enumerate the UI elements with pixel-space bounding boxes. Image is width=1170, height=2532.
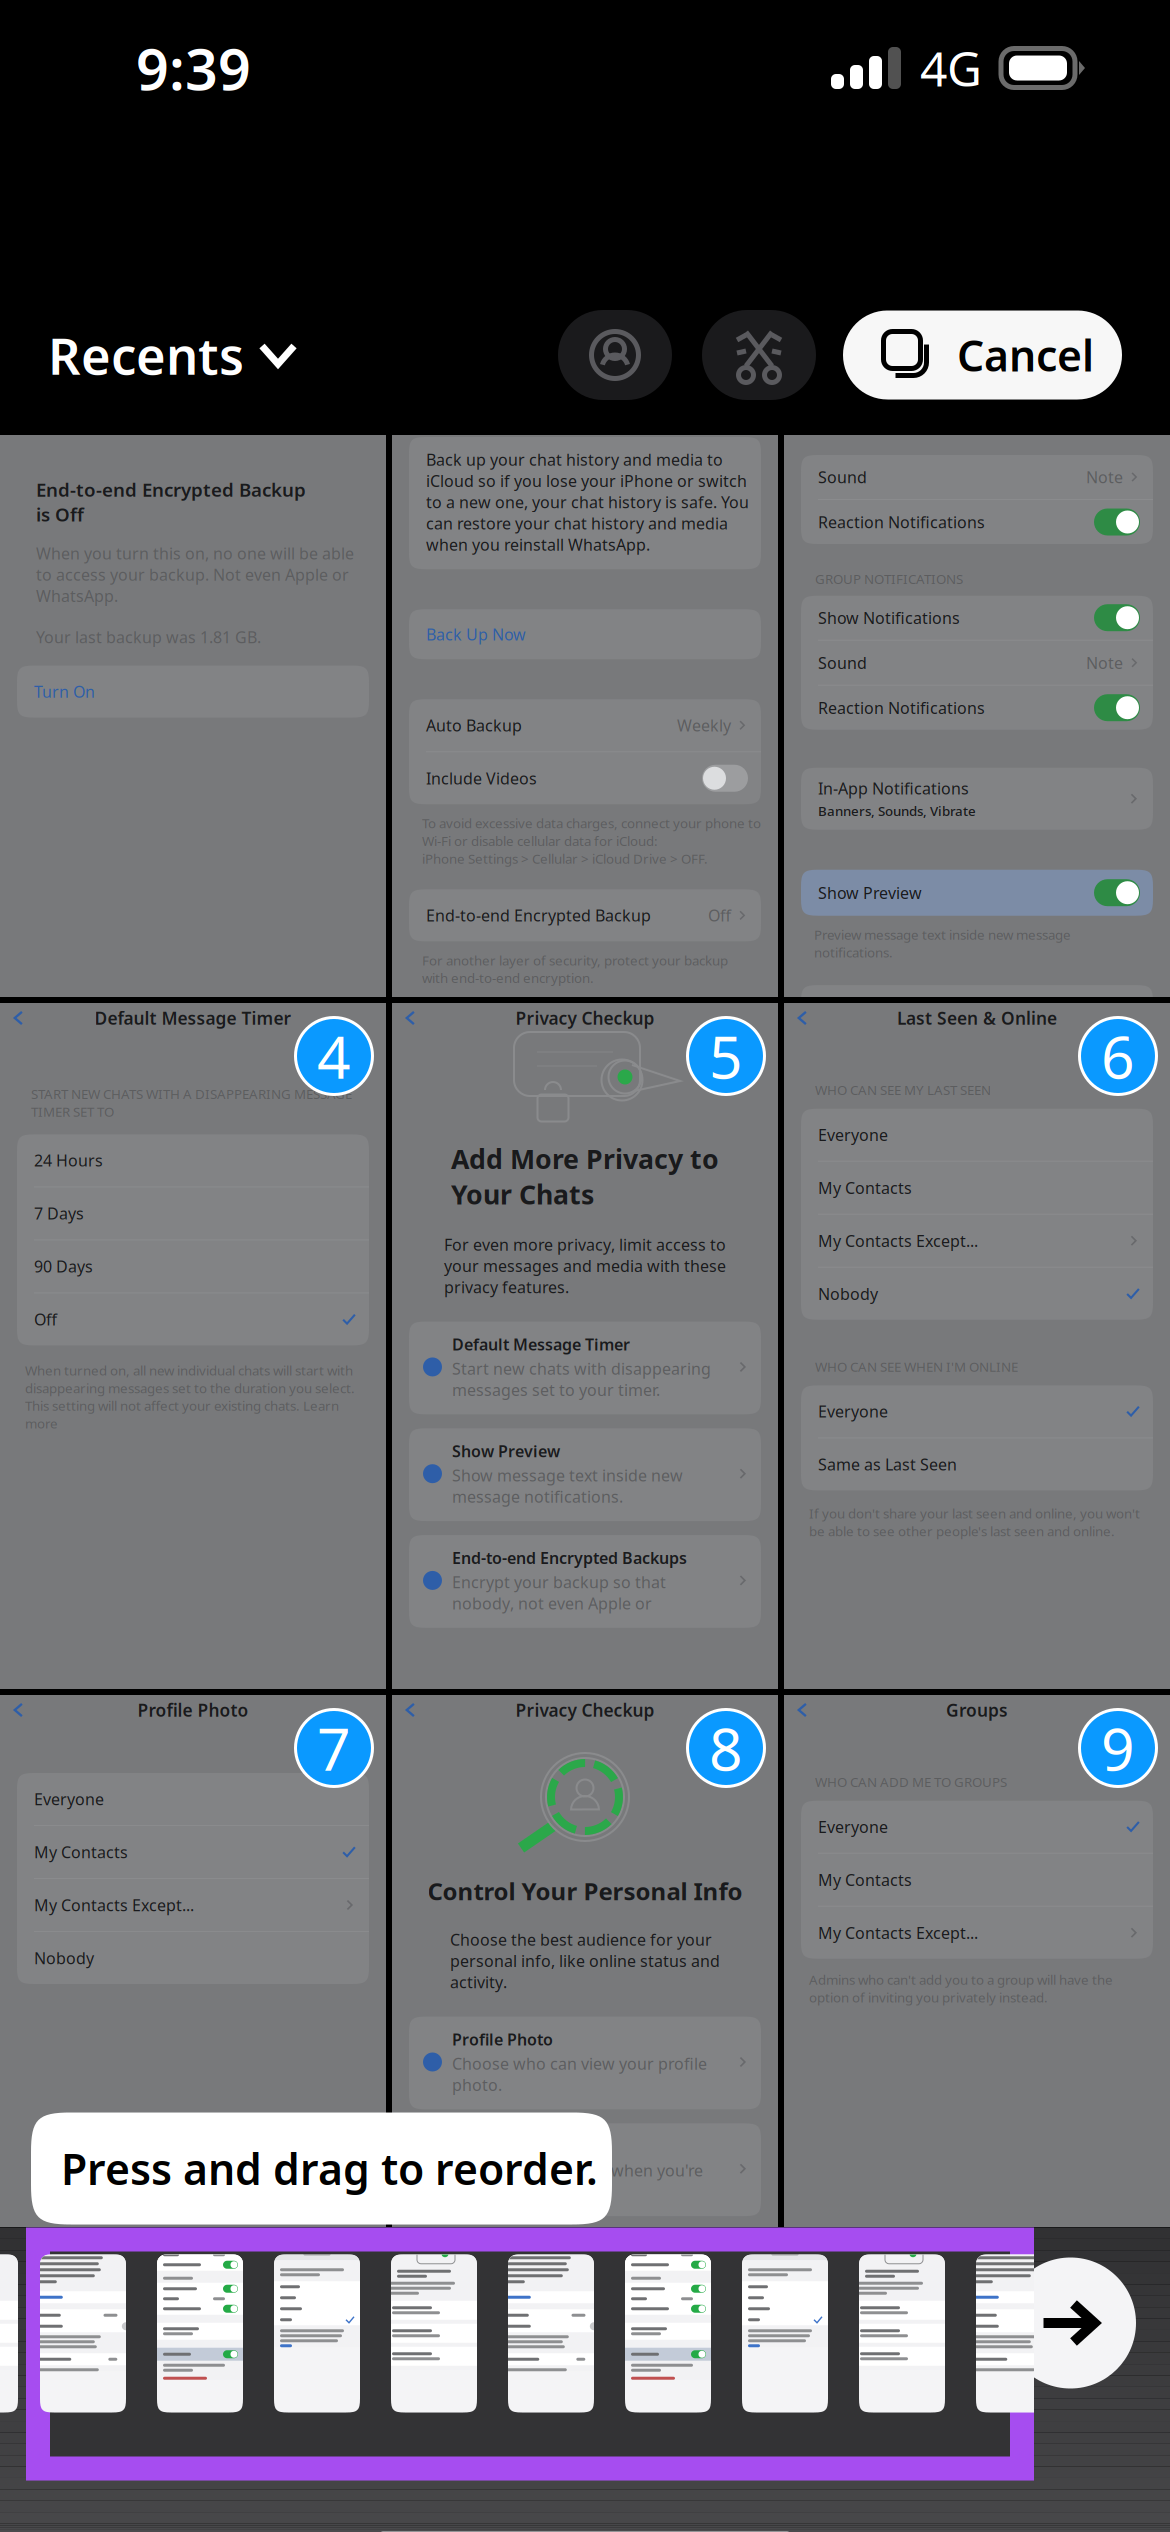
staticText: Banners, Sounds, Vibrate xyxy=(818,802,976,820)
button[interactable]: Privacy Checkup xyxy=(392,1695,778,2227)
staticText: For even more privacy, limit access to y… xyxy=(444,1234,726,1297)
staticText: End-to-end Encrypted Backups xyxy=(452,1547,687,1568)
staticText: 9:39 xyxy=(136,30,251,106)
staticText: Show Notifications xyxy=(818,607,960,628)
staticText: Include Videos xyxy=(426,768,537,789)
staticText: 9 xyxy=(1101,1709,1135,1787)
staticText: Preview message text inside new message … xyxy=(814,926,1071,961)
staticText: In-App Notifications xyxy=(818,778,969,799)
button[interactable]: End-to-end Encrypted Backup is Off xyxy=(0,435,386,997)
staticText: Show message text inside new message not… xyxy=(452,1465,683,1507)
staticText: Off xyxy=(34,1309,57,1330)
staticText: Choose who can view your profile photo. xyxy=(452,2053,707,2095)
staticText: WHO CAN SEE MY LAST SEEN xyxy=(815,1081,991,1099)
staticText: Show Preview xyxy=(818,882,922,903)
staticText: End-to-end Encrypted Backup is Off xyxy=(36,477,306,527)
staticText: When you turn this on, no one will be ab… xyxy=(36,543,354,606)
staticText: Last Seen & Online xyxy=(452,2135,597,2157)
staticText: Groups xyxy=(946,1698,1008,1721)
staticText: 90 Days xyxy=(34,1256,93,1277)
staticText: Profile Photo xyxy=(137,1698,248,1721)
staticText: Same as Last Seen xyxy=(818,1454,957,1475)
button[interactable]: Account xyxy=(558,310,672,400)
staticText: Admins who can't add you to a group will… xyxy=(809,1971,1113,2006)
staticText: Back up your chat history and media to i… xyxy=(426,449,749,555)
staticText: Choose who can see when you're online. xyxy=(452,2160,703,2202)
staticText: Everyone xyxy=(34,1788,104,1810)
staticText: Control Your Personal Info xyxy=(427,1875,742,1907)
button[interactable]: Sound xyxy=(784,435,1170,997)
staticText: WHO CAN SEE WHEN I'M ONLINE xyxy=(815,1358,1018,1375)
staticText: Auto Backup xyxy=(426,715,522,736)
button[interactable]: Continue xyxy=(1005,2257,1136,2388)
button[interactable]: Recents xyxy=(48,305,296,405)
staticText: Default Message Timer xyxy=(94,1006,291,1029)
staticText: Everyone xyxy=(818,1124,888,1145)
staticText: GROUP NOTIFICATIONS xyxy=(815,570,963,588)
staticText: Nobody xyxy=(818,1283,878,1304)
staticText: If you don't share your last seen and on… xyxy=(809,1504,1140,1540)
staticText: 8 xyxy=(709,1709,743,1787)
staticText: Your last backup was 1.81 GB. xyxy=(36,626,261,647)
staticText: Sound xyxy=(818,652,867,673)
staticText: Encrypt your backup so that nobody, not … xyxy=(452,1571,666,1614)
staticText: Reaction Notifications xyxy=(818,511,985,533)
staticText: My Contacts xyxy=(818,1869,912,1890)
staticText: Note xyxy=(1086,466,1123,488)
staticText: Privacy Checkup xyxy=(515,1698,654,1721)
staticText: My Contacts Except... xyxy=(818,1922,978,1943)
staticText: Privacy Checkup xyxy=(515,1006,654,1029)
staticText: End-to-end Encrypted Backup xyxy=(426,905,651,926)
button[interactable]: Groups xyxy=(784,1695,1170,2227)
staticText: Reaction Notifications xyxy=(818,697,985,718)
button[interactable]: Total Size: 1.81 GB xyxy=(392,435,778,997)
staticText: Nobody xyxy=(34,1947,94,1969)
staticText: 24 Hours xyxy=(34,1150,103,1171)
staticText: Off xyxy=(708,905,731,926)
staticText: When turned on, all new individual chats… xyxy=(25,1361,355,1432)
staticText: 7 Days xyxy=(34,1203,84,1224)
staticText: 4 xyxy=(317,1017,351,1095)
staticText: Add More Privacy to Your Chats xyxy=(451,1141,719,1212)
staticText: Show Preview xyxy=(452,1440,560,1461)
staticText: Back Up Now xyxy=(426,624,526,645)
staticText: WHO CAN ADD ME TO GROUPS xyxy=(815,1773,1007,1791)
staticText: Recents xyxy=(48,321,244,389)
staticText: Cancel xyxy=(957,327,1094,383)
staticText: 4G xyxy=(920,36,982,100)
staticText: My Contacts xyxy=(818,1177,912,1198)
staticText: Default Message Timer xyxy=(452,1334,630,1355)
staticText: Turn On xyxy=(34,681,95,702)
button[interactable]: Cancel xyxy=(843,310,1122,399)
staticText: 7 xyxy=(317,1709,351,1787)
staticText: My Contacts xyxy=(34,1841,128,1863)
staticText: Press and drag to reorder. xyxy=(61,2140,598,2197)
staticText: Choose the best audience for your person… xyxy=(450,1929,720,1993)
staticText: 5 xyxy=(709,1017,743,1095)
staticText: Everyone xyxy=(818,1401,888,1422)
staticText: 6 xyxy=(1101,1017,1135,1095)
staticText: Note xyxy=(1086,652,1123,673)
staticText: Last Seen & Online xyxy=(897,1006,1057,1029)
staticText: For another layer of security, protect y… xyxy=(422,951,728,987)
staticText: My Contacts Except... xyxy=(34,1894,194,1916)
button[interactable]: Privacy Checkup xyxy=(392,1003,778,1689)
button[interactable]: Default Message Timer xyxy=(0,1003,386,1689)
staticText: My Contacts Except... xyxy=(818,1230,978,1251)
staticText: Everyone xyxy=(818,1816,888,1837)
staticText: START NEW CHATS WITH A DISAPPEARING MESS… xyxy=(31,1085,352,1120)
staticText: Start new chats with disappearing messag… xyxy=(452,1358,711,1400)
staticText: Reset Notification Settings xyxy=(818,997,1019,1019)
staticText: Weekly xyxy=(677,715,731,736)
staticText: Sound xyxy=(818,466,867,488)
button[interactable]: Markup xyxy=(702,310,816,400)
staticText: To avoid excessive data charges, connect… xyxy=(422,814,761,867)
button[interactable]: Last Seen & Online xyxy=(784,1003,1170,1689)
button[interactable]: Profile Photo xyxy=(0,1695,386,2227)
staticText: Profile Photo xyxy=(452,2029,553,2050)
